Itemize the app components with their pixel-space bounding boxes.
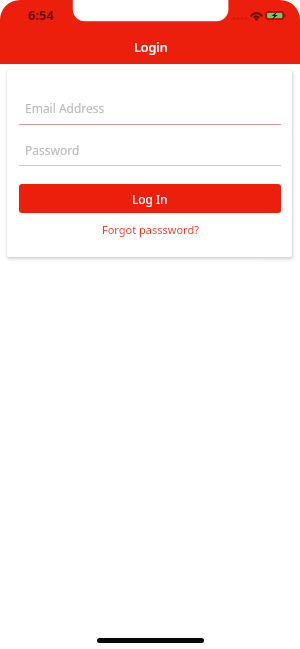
staticText: 6:54: [28, 6, 54, 24]
staticText: Forgot passsword?: [102, 222, 199, 237]
other: Home indicator: [97, 638, 204, 643]
button[interactable]: Log In: [19, 184, 281, 213]
staticText: Password: [25, 142, 80, 158]
staticText: Login: [134, 39, 168, 56]
staticText: Email Address: [25, 100, 105, 116]
button[interactable]: Forgot passsword?: [19, 218, 281, 240]
staticText: Log In: [132, 191, 168, 207]
